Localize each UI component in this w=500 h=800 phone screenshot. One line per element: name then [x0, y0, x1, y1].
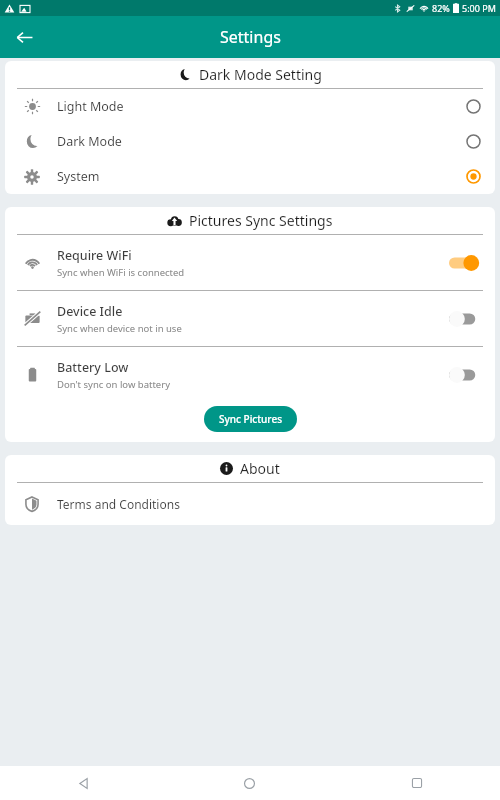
button[interactable]: System	[5, 159, 495, 194]
staticText: About	[240, 459, 280, 478]
staticText: System	[57, 168, 100, 185]
staticText: Sync Pictures	[219, 412, 282, 426]
staticText: Device Idle	[57, 303, 123, 320]
staticText: Sync when WiFi is connected	[57, 266, 185, 279]
staticText: Battery Low	[57, 359, 129, 376]
staticText: Terms and Conditions	[57, 496, 180, 512]
button[interactable]: Sync Pictures	[204, 406, 297, 432]
staticText: Require WiFi	[57, 247, 132, 264]
staticText: Dark Mode	[57, 133, 122, 150]
button[interactable]: Home	[166, 766, 333, 800]
button[interactable]: Back	[0, 766, 166, 800]
staticText: Pictures Sync Settings	[189, 211, 333, 230]
button[interactable]: Device Idle	[5, 291, 495, 346]
button[interactable]: Toggle	[449, 310, 481, 328]
staticText: Light Mode	[57, 98, 124, 115]
button[interactable]: Back	[6, 19, 42, 55]
button[interactable]: Recent apps	[333, 766, 500, 800]
button[interactable]: Toggle	[449, 366, 481, 384]
staticText: Dark Mode Setting	[199, 65, 322, 84]
button[interactable]: Battery Low	[5, 347, 495, 402]
staticText: Settings	[220, 26, 281, 48]
button[interactable]: Toggle	[449, 254, 481, 272]
button[interactable]: Dark Mode	[5, 124, 495, 159]
staticText: 5:00 PM	[462, 2, 496, 14]
button[interactable]: Light Mode	[5, 89, 495, 124]
button[interactable]: Terms and Conditions	[5, 483, 495, 525]
staticText: Don't sync on low battery	[57, 378, 170, 391]
button[interactable]: Require WiFi	[5, 235, 495, 290]
staticText: 82%	[432, 2, 450, 14]
staticText: Sync when device not in use	[57, 322, 182, 335]
